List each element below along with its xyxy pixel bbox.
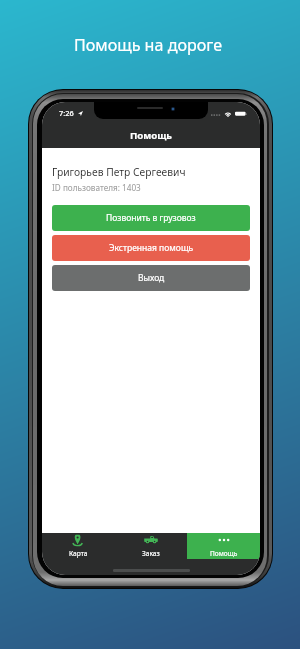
button[interactable]: Карта (42, 533, 114, 559)
button[interactable]: Выход (52, 265, 250, 291)
button[interactable]: Помощь (187, 533, 260, 559)
button[interactable]: Экстренная помощь (52, 235, 250, 261)
button[interactable]: Позвонить в грузовоз (52, 205, 250, 231)
staticText: Григорьев Петр Сергеевич (52, 165, 186, 179)
staticText: Позвонить в грузовоз (106, 212, 196, 224)
staticText: 7:26 (59, 108, 74, 118)
button[interactable]: Заказ (114, 533, 187, 559)
staticText: Помощь (42, 129, 260, 142)
staticText: Помощь (210, 549, 238, 558)
staticText: Помощь на дороге (0, 34, 298, 56)
staticText: Экстренная помощь (109, 242, 194, 254)
staticText: Выход (138, 272, 165, 284)
staticText: Заказ (142, 549, 160, 558)
staticText: ID пользователя: 1403 (52, 182, 141, 193)
staticText: Карта (69, 549, 88, 558)
